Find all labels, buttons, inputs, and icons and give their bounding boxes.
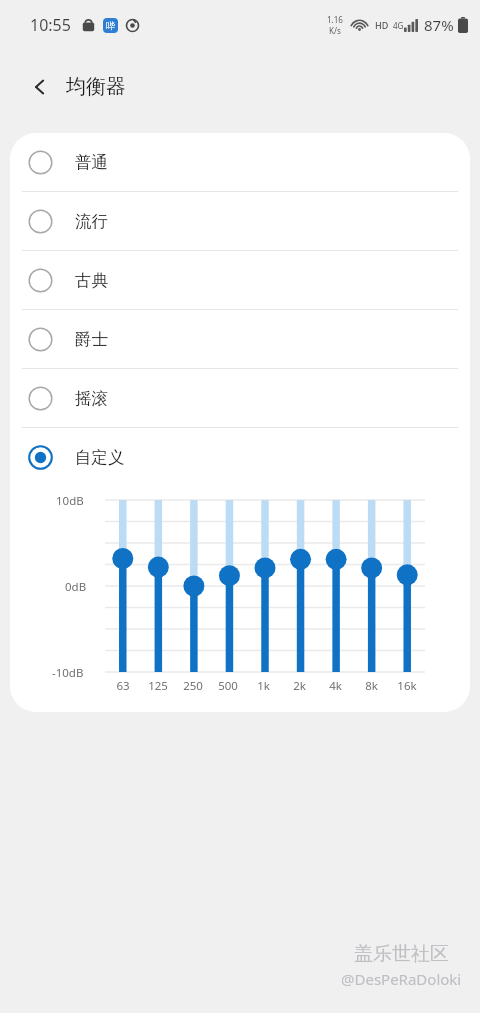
staticText: 均衡器: [66, 74, 126, 99]
staticText: 盖乐世社区: [354, 942, 449, 966]
staticText: 8k: [365, 678, 378, 694]
button[interactable]: 爵士: [10, 310, 470, 368]
staticText: 摇滚: [75, 388, 108, 409]
staticText: 10:55: [30, 14, 71, 36]
staticText: K/s: [329, 25, 341, 36]
staticText: 500: [218, 678, 238, 694]
button[interactable]: 流行: [10, 192, 470, 250]
staticText: 250: [183, 678, 203, 694]
staticText: 125: [148, 678, 168, 694]
staticText: 古典: [75, 270, 108, 291]
staticText: 63: [116, 678, 130, 694]
staticText: 1k: [257, 678, 270, 694]
staticText: @DesPeRaDoloki: [341, 969, 462, 989]
staticText: 爵士: [75, 329, 108, 350]
staticText: 普通: [75, 152, 108, 173]
staticText: 2k: [293, 678, 306, 694]
staticText: 10dB: [56, 493, 84, 509]
staticText: 1.16: [327, 14, 343, 25]
staticText: 4k: [329, 678, 342, 694]
staticText: 流行: [75, 211, 108, 232]
button[interactable]: 自定义: [10, 428, 470, 486]
staticText: 16k: [397, 678, 417, 694]
staticText: HD: [375, 19, 389, 31]
staticText: 哔: [106, 20, 115, 31]
staticText: 自定义: [75, 447, 125, 468]
button[interactable]: Back: [20, 67, 60, 107]
button[interactable]: 普通: [10, 133, 470, 191]
staticText: 87%: [424, 15, 454, 35]
button[interactable]: 摇滚: [10, 369, 470, 427]
staticText: 4G: [393, 20, 404, 31]
button[interactable]: 古典: [10, 251, 470, 309]
staticText: -10dB: [52, 665, 84, 681]
staticText: 0dB: [65, 579, 87, 595]
